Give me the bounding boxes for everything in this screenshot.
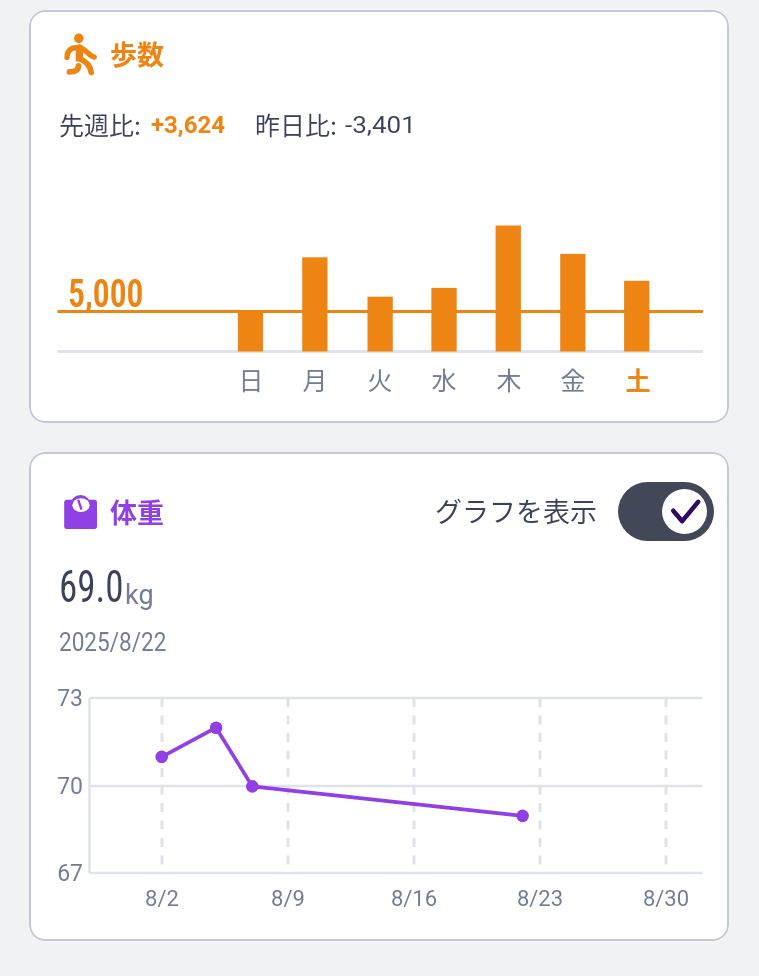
staticText: 8/2 — [122, 886, 202, 914]
staticText: +3,624 — [151, 111, 226, 139]
staticText: グラフを表示 — [435, 491, 597, 530]
staticText: 木 — [487, 361, 531, 395]
staticText: -3,401 — [345, 111, 417, 139]
staticText: 歩数 — [110, 34, 164, 73]
button[interactable]: 体重 — [29, 452, 729, 941]
staticText: 火 — [358, 361, 402, 395]
staticText: 昨日比: — [255, 106, 337, 142]
staticText: 体重 — [110, 492, 164, 531]
staticText: kg — [125, 579, 154, 611]
staticText: 8/23 — [500, 886, 580, 914]
staticText: 67 — [34, 860, 83, 888]
staticText: 金 — [551, 361, 595, 395]
staticText: 8/30 — [626, 886, 706, 914]
staticText: 水 — [422, 361, 466, 395]
button[interactable]: 歩数 — [29, 10, 729, 423]
button[interactable]: グラフを表示 — [618, 482, 714, 541]
staticText: 5,000 — [68, 272, 144, 317]
staticText: 2025/8/22 — [59, 628, 166, 657]
staticText: 先週比: — [59, 106, 141, 142]
staticText: 8/9 — [248, 886, 328, 914]
staticText: 70 — [34, 773, 83, 801]
staticText: 69.0 — [59, 561, 124, 613]
staticText: 土 — [616, 361, 660, 395]
staticText: 月 — [293, 361, 337, 395]
staticText: 8/16 — [374, 886, 454, 914]
staticText: 日 — [229, 361, 273, 395]
staticText: 73 — [34, 685, 83, 713]
